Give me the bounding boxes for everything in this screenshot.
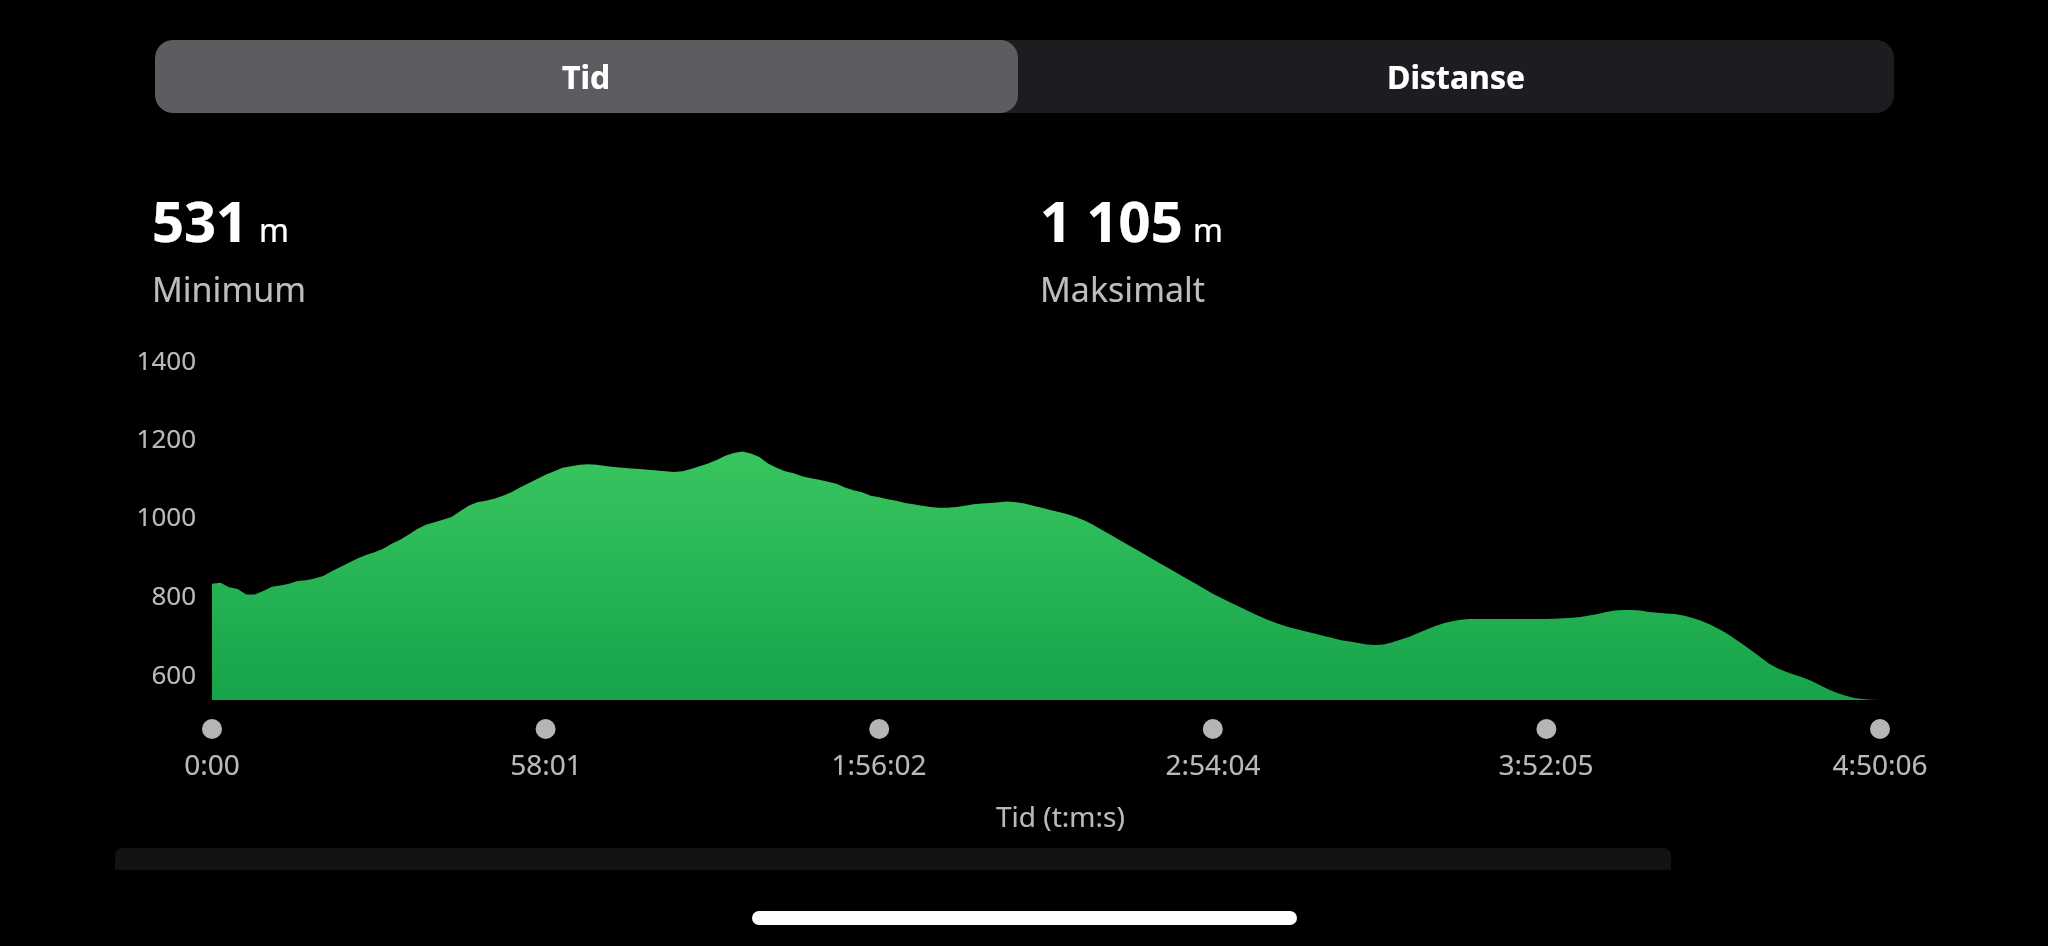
staticText: 1 105: [1040, 182, 1183, 258]
staticText: 1000: [136, 498, 196, 533]
staticText: 2:54:04: [1165, 745, 1261, 783]
staticText: 0:00: [184, 745, 240, 783]
button[interactable]: Distanse: [1018, 40, 1894, 113]
staticText: m: [259, 208, 289, 252]
staticText: 1:56:02: [831, 745, 927, 783]
staticText: 1200: [136, 420, 196, 455]
staticText: Tid: [562, 55, 611, 99]
button[interactable]: Tid: [155, 40, 1018, 113]
staticText: Distanse: [1387, 55, 1526, 99]
staticText: Minimum: [152, 266, 306, 312]
staticText: 58:01: [510, 745, 582, 783]
staticText: 3:52:05: [1498, 745, 1594, 783]
staticText: Tid (t:m:s): [996, 797, 1125, 835]
staticText: 531: [152, 182, 249, 258]
staticText: Maksimalt: [1040, 266, 1206, 312]
staticText: m: [1193, 208, 1223, 252]
staticText: 800: [151, 577, 196, 612]
staticText: 1400: [136, 342, 196, 377]
staticText: 600: [151, 656, 196, 691]
staticText: 4:50:06: [1832, 745, 1928, 783]
